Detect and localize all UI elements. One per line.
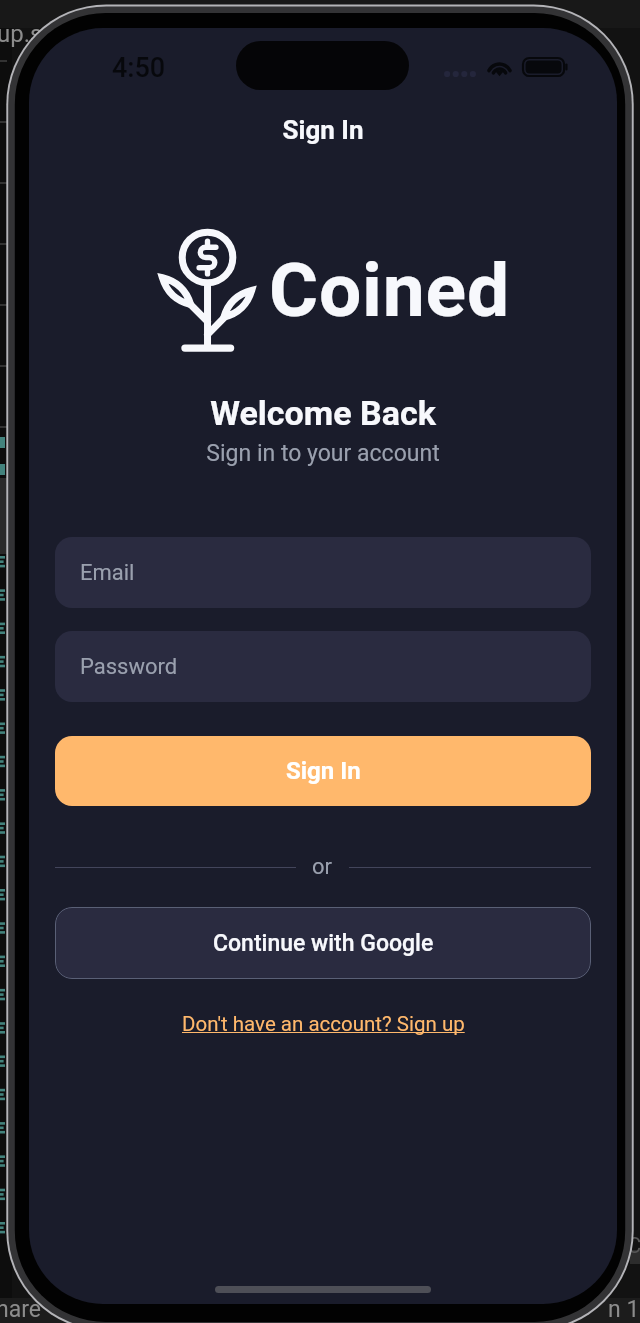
staticText: Email <box>80 560 135 586</box>
button[interactable]: Sign In <box>55 736 591 806</box>
staticText: Continue with Google <box>213 930 434 957</box>
staticText: Welcome Back <box>29 393 617 433</box>
button[interactable]: Don't have an account? Sign up <box>182 1012 465 1036</box>
button[interactable]: Email <box>55 537 591 608</box>
button[interactable]: Continue with Google <box>55 907 591 979</box>
staticText: Co <box>627 1233 640 1259</box>
staticText: Password <box>80 654 178 680</box>
staticText: Sign in to your account <box>29 440 617 467</box>
staticText: up.s <box>0 20 43 48</box>
staticText: hare <box>0 1296 41 1323</box>
staticText: 4:50 <box>112 52 166 84</box>
staticText: Coined <box>269 246 511 334</box>
staticText: Sign In <box>286 757 361 785</box>
staticText: Sign In <box>29 115 617 145</box>
button[interactable]: Password <box>55 631 591 702</box>
staticText: or <box>312 854 333 880</box>
staticText: n 1 <box>608 1296 640 1323</box>
